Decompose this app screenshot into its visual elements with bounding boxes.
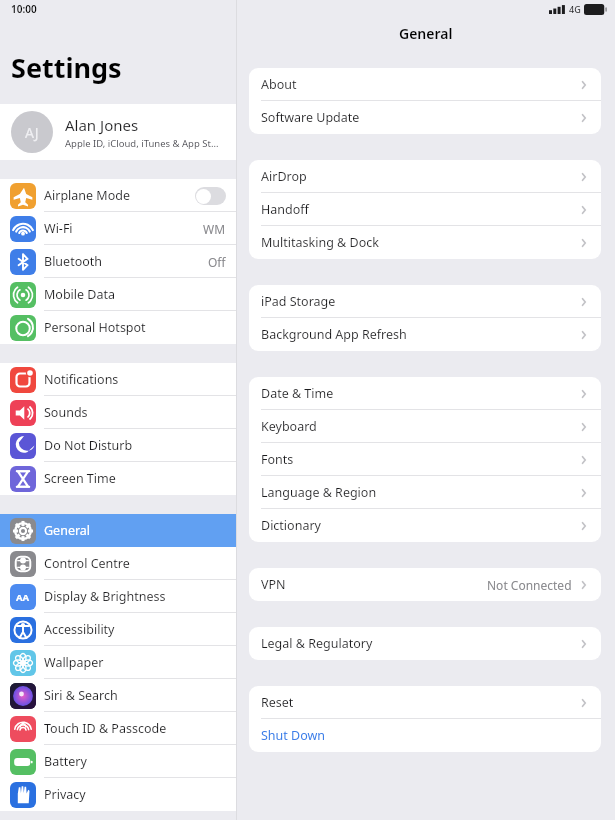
staticText: Software Update: [261, 109, 360, 126]
staticText: Legal & Regulatory: [261, 635, 373, 652]
button[interactable]: Privacy: [0, 778, 236, 811]
staticText: iPad Storage: [261, 293, 336, 310]
staticText: About: [261, 76, 297, 93]
staticText: Wallpaper: [44, 654, 104, 671]
button[interactable]: Reset: [249, 686, 601, 719]
button[interactable]: Background App Refresh: [249, 318, 601, 351]
button[interactable]: VPN: [249, 568, 601, 601]
button[interactable]: Touch ID & Passcode: [0, 712, 236, 745]
staticText: Date & Time: [261, 385, 334, 402]
button[interactable]: Legal & Regulatory: [249, 627, 601, 660]
button[interactable]: Personal Hotspot: [0, 311, 236, 344]
button[interactable]: Sounds: [0, 396, 236, 429]
button[interactable]: Shut Down: [249, 719, 601, 752]
staticText: Background App Refresh: [261, 326, 407, 343]
button[interactable]: About: [249, 68, 601, 101]
staticText: Notifications: [44, 371, 119, 388]
staticText: 4G: [569, 3, 581, 15]
staticText: AA: [16, 591, 30, 604]
button[interactable]: Handoff: [249, 193, 601, 226]
staticText: Keyboard: [261, 418, 317, 435]
button[interactable]: Keyboard: [249, 410, 601, 443]
staticText: VPN: [261, 576, 286, 593]
button[interactable]: Siri & Search: [0, 679, 236, 712]
button[interactable]: Screen Time: [0, 462, 236, 495]
button[interactable]: Battery: [0, 745, 236, 778]
button[interactable]: Multitasking & Dock: [249, 226, 601, 259]
button[interactable]: Fonts: [249, 443, 601, 476]
button[interactable]: Dictionary: [249, 509, 601, 542]
staticText: Not Connected: [487, 577, 572, 593]
staticText: 10:00: [11, 2, 37, 16]
button[interactable]: AirDrop: [249, 160, 601, 193]
button[interactable]: General: [0, 514, 236, 547]
button[interactable]: Wi-Fi: [0, 212, 236, 245]
button[interactable]: AA: [0, 580, 236, 613]
staticText: Bluetooth: [44, 253, 103, 270]
staticText: Language & Region: [261, 484, 377, 501]
button[interactable]: Accessibility: [0, 613, 236, 646]
button[interactable]: Software Update: [249, 101, 601, 134]
staticText: Fonts: [261, 451, 294, 468]
staticText: WM: [203, 221, 226, 237]
staticText: General: [44, 522, 91, 539]
staticText: Airplane Mode: [44, 187, 130, 204]
button[interactable]: Bluetooth: [0, 245, 236, 278]
button[interactable]: Control Centre: [0, 547, 236, 580]
staticText: Mobile Data: [44, 286, 116, 303]
button[interactable]: Language & Region: [249, 476, 601, 509]
staticText: Touch ID & Passcode: [44, 720, 167, 737]
staticText: Screen Time: [44, 470, 116, 487]
staticText: Multitasking & Dock: [261, 234, 379, 251]
staticText: Control Centre: [44, 555, 130, 572]
staticText: Privacy: [44, 786, 86, 803]
staticText: Do Not Disturb: [44, 437, 133, 454]
button[interactable]: Do Not Disturb: [0, 429, 236, 462]
staticText: Accessibility: [44, 621, 115, 638]
staticText: Settings: [11, 49, 122, 86]
button[interactable]: Wallpaper: [0, 646, 236, 679]
button[interactable]: [195, 187, 226, 205]
staticText: Apple ID, iCloud, iTunes & App St…: [65, 137, 219, 150]
staticText: Personal Hotspot: [44, 319, 146, 336]
button[interactable]: Date & Time: [249, 377, 601, 410]
staticText: Display & Brightness: [44, 588, 166, 605]
staticText: Alan Jones: [65, 115, 139, 135]
staticText: General: [399, 24, 453, 43]
button[interactable]: Notifications: [0, 363, 236, 396]
button[interactable]: Airplane Mode: [0, 179, 236, 212]
staticText: Shut Down: [261, 727, 326, 744]
staticText: Sounds: [44, 404, 88, 421]
staticText: Battery: [44, 753, 87, 770]
button[interactable]: Mobile Data: [0, 278, 236, 311]
staticText: Handoff: [261, 201, 309, 218]
staticText: Siri & Search: [44, 687, 118, 704]
button[interactable]: AJ: [0, 104, 236, 160]
staticText: AJ: [25, 123, 39, 142]
staticText: Reset: [261, 694, 294, 711]
staticText: Wi-Fi: [44, 220, 73, 237]
staticText: AirDrop: [261, 168, 307, 185]
button[interactable]: iPad Storage: [249, 285, 601, 318]
staticText: Off: [208, 254, 226, 270]
staticText: Dictionary: [261, 517, 321, 534]
